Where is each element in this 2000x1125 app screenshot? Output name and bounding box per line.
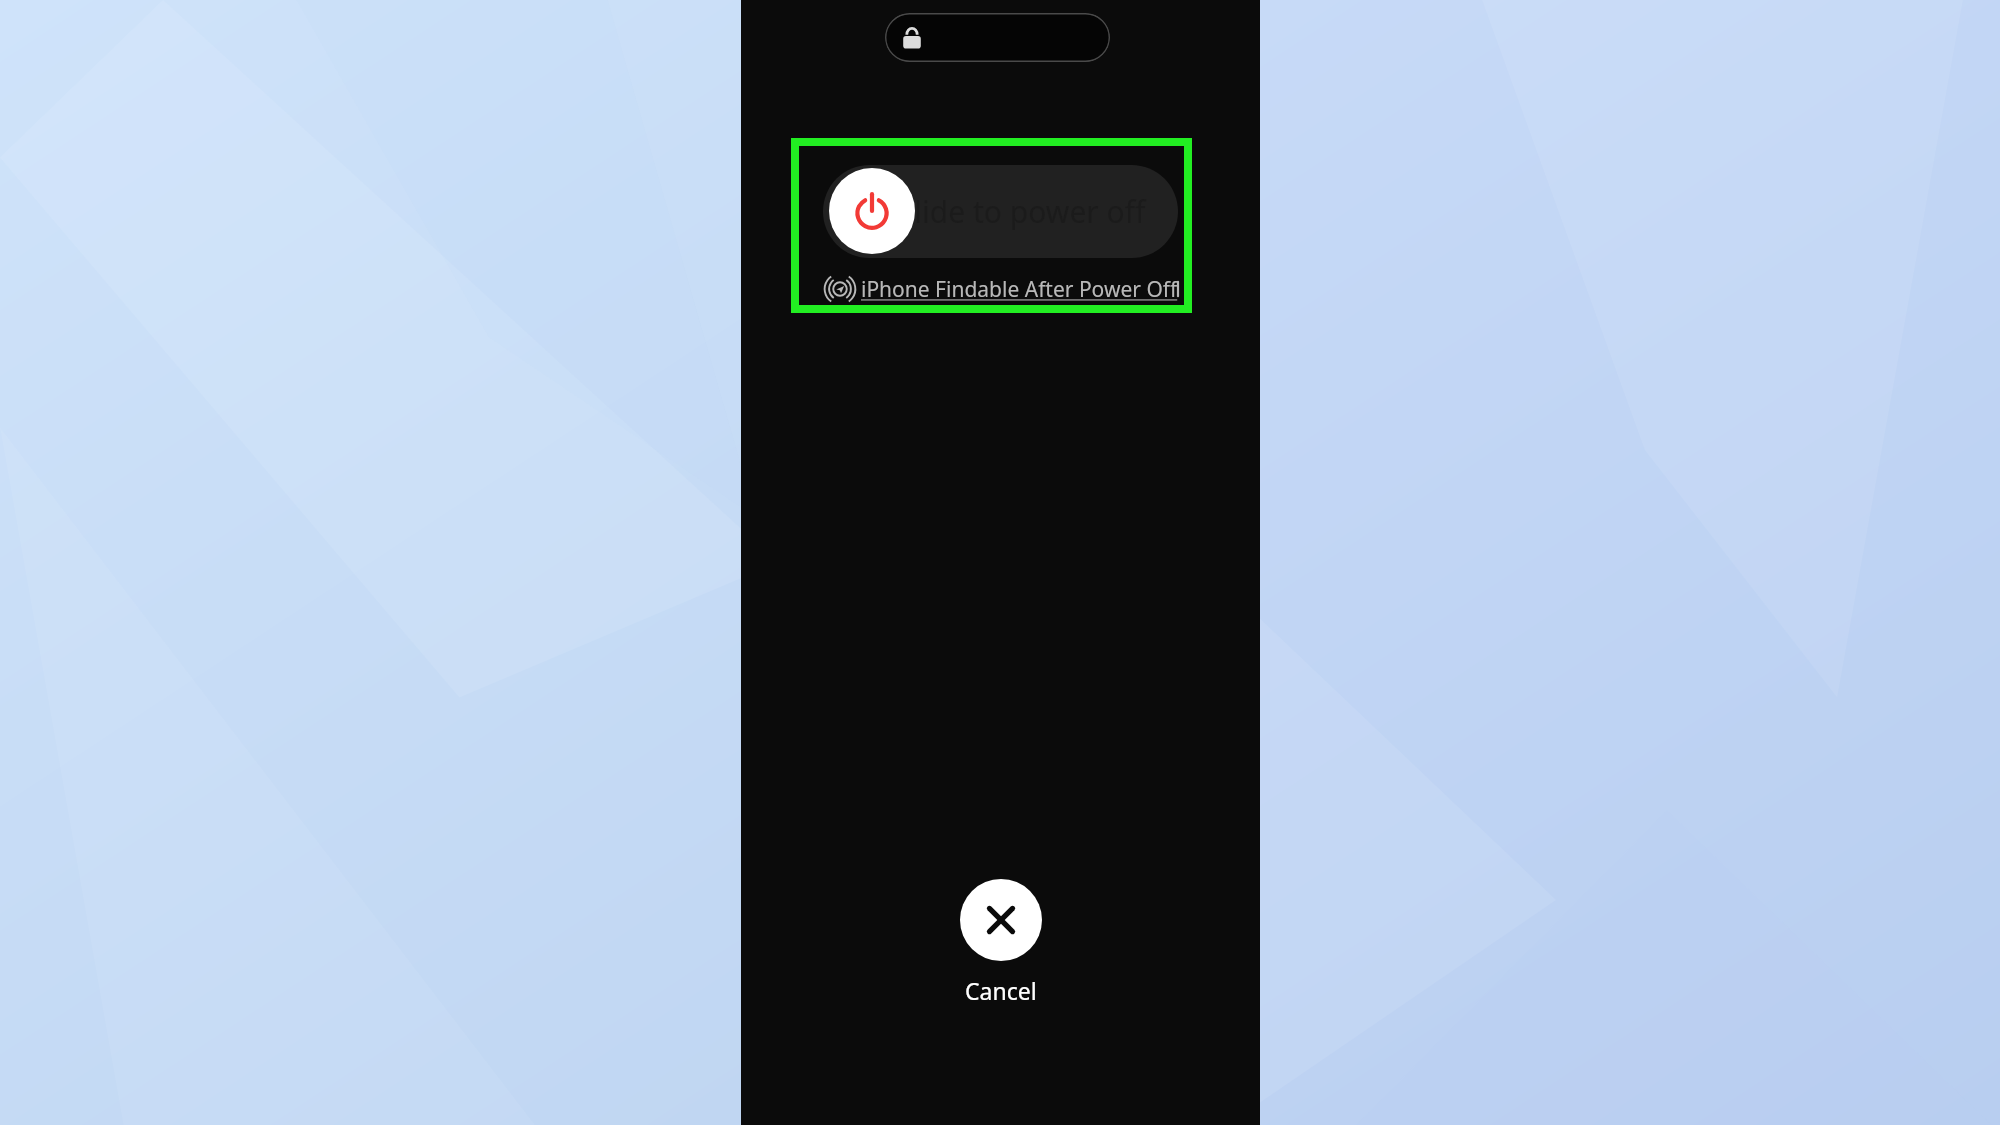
button[interactable]: Locked — [885, 13, 1110, 62]
staticText: slide to power off — [900, 191, 1146, 232]
staticText: Cancel — [965, 975, 1037, 1006]
button[interactable]: Slide to power off — [829, 168, 915, 254]
staticText: iPhone Findable After Power Off — [861, 275, 1178, 304]
button[interactable]: Cancel — [941, 879, 1061, 1006]
button[interactable]: slide to power off — [823, 165, 1178, 258]
button[interactable]: iPhone Findable After Power Off — [823, 272, 1178, 306]
